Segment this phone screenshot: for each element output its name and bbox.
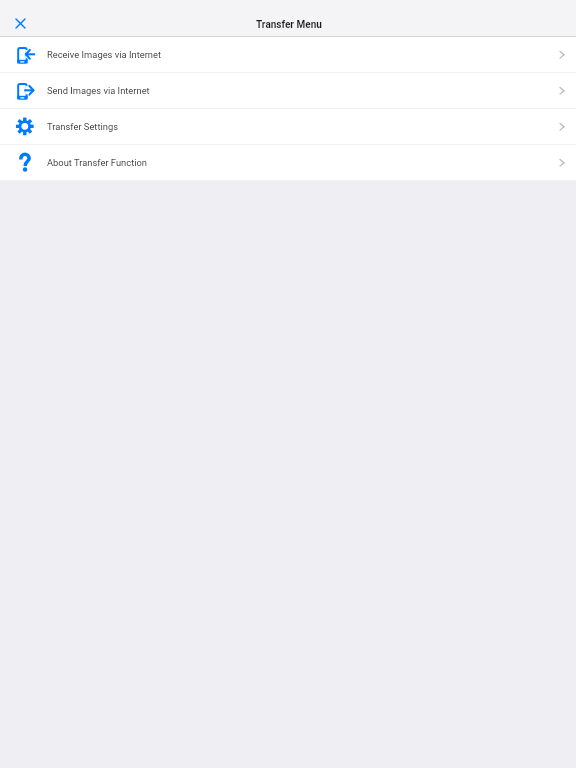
button[interactable]: Transfer Settings	[0, 109, 576, 144]
staticText: Receive Images via Internet	[47, 49, 161, 60]
staticText: About Transfer Function	[47, 157, 147, 168]
staticText: Send Images via Internet	[47, 85, 150, 96]
staticText: Transfer Menu	[256, 19, 322, 31]
button[interactable]: Close	[9, 12, 32, 35]
button[interactable]: Receive Images via Internet	[0, 37, 576, 72]
button[interactable]: About Transfer Function	[0, 145, 576, 180]
button[interactable]: Send Images via Internet	[0, 73, 576, 108]
staticText: Transfer Settings	[47, 121, 118, 132]
